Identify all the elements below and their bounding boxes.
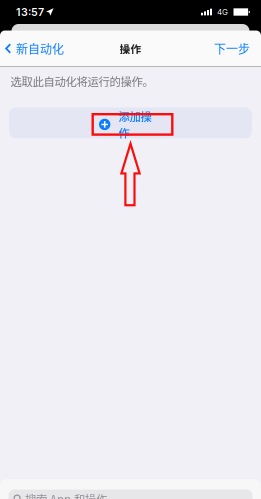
staticText: 添加操作 [119,108,152,141]
staticText: 搜索 App 和操作 [25,491,107,499]
staticText: 操作 [119,41,141,56]
button[interactable]: 新自动化 [0,35,64,62]
staticText: 选取此自动化将运行的操作。 [10,73,153,89]
staticText: 13:57 [16,5,44,18]
button[interactable]: 下一步 [214,35,261,62]
staticText: 下一步 [214,40,250,57]
button[interactable]: 添加操作 [9,107,252,138]
staticText: 4G [217,7,228,17]
staticText: 新自动化 [16,40,64,57]
